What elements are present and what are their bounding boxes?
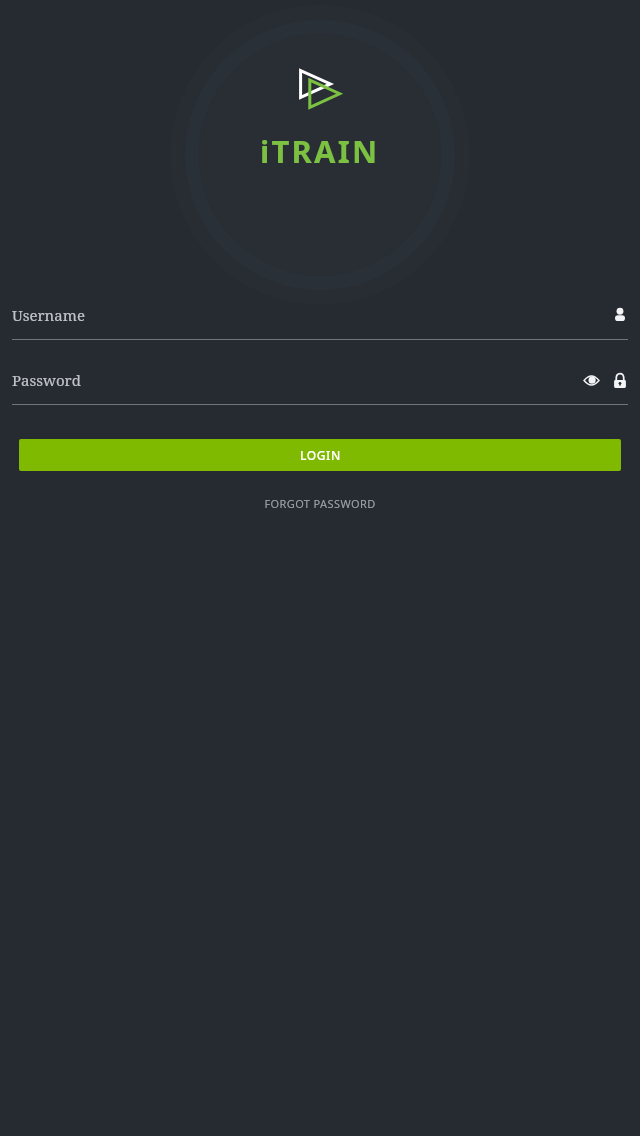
staticText: LOGIN: [300, 447, 341, 463]
button[interactable]: LOGIN: [19, 439, 621, 471]
other: Username: [612, 307, 628, 323]
staticText: FORGOT PASSWORD: [264, 496, 376, 511]
button[interactable]: Username: [0, 300, 640, 340]
other: iTRAIN logo: [300, 70, 340, 108]
staticText: iTRAIN: [260, 130, 380, 172]
other: Show password: [583, 372, 600, 389]
staticText: Password: [12, 370, 583, 390]
other: Password locked: [612, 373, 628, 389]
button[interactable]: Password: [0, 365, 640, 405]
button[interactable]: FORGOT PASSWORD: [254, 492, 386, 515]
staticText: Username: [12, 305, 612, 325]
